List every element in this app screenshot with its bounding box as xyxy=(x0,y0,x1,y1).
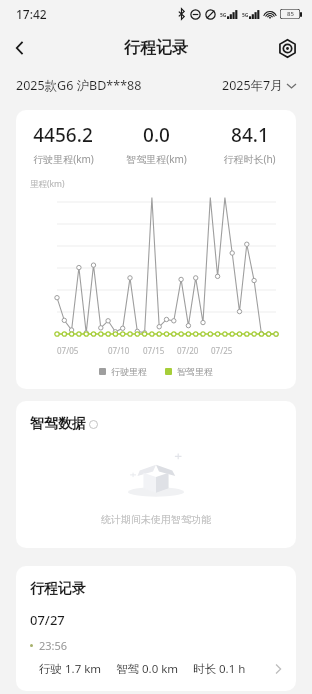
staticText: 07/27 xyxy=(30,611,65,629)
staticText: 17:42 xyxy=(16,6,47,22)
staticText: 行驶 1.7 km xyxy=(39,661,102,677)
staticText: 23:56 xyxy=(39,638,68,653)
staticText: 07/25 xyxy=(211,345,233,356)
staticText: 2025款G6 沪BD***88 xyxy=(16,77,142,94)
button[interactable]: Settings xyxy=(270,31,304,65)
staticText: 智驾 0.0 km xyxy=(116,661,179,677)
staticText: 07/05 xyxy=(57,345,79,356)
staticText: 5G xyxy=(242,12,249,19)
staticText: 84.1 xyxy=(231,122,269,148)
staticText: 智驾里程 xyxy=(177,366,213,377)
staticText: 2025年7月 xyxy=(222,77,283,94)
staticText: 智驾里程(km) xyxy=(126,152,187,166)
staticText: 行程时长(h) xyxy=(223,152,276,166)
staticText: 4456.2 xyxy=(33,122,93,148)
staticText: 统计期间未使用智驾功能 xyxy=(16,513,296,526)
button[interactable]: Back xyxy=(0,28,40,68)
staticText: 时长 0.1 h xyxy=(193,661,246,677)
staticText: 智驾数据 xyxy=(30,415,86,433)
staticText: 07/10 xyxy=(108,345,130,356)
staticText: 行驶里程 xyxy=(111,366,147,377)
staticText: 行程记录 xyxy=(124,38,188,58)
staticText: 行程记录 xyxy=(30,580,86,598)
staticText: 里程(km) xyxy=(30,178,65,190)
staticText: 07/15 xyxy=(143,345,165,356)
staticText: 0.0 xyxy=(143,122,170,148)
staticText: 行驶里程(km) xyxy=(33,152,94,166)
staticText: 07/20 xyxy=(177,345,199,356)
button[interactable]: 23:56 xyxy=(16,638,296,691)
staticText: 5G xyxy=(220,12,227,19)
button[interactable]: 2025年7月 xyxy=(222,77,296,94)
staticText: 85 xyxy=(287,10,294,18)
other: Info xyxy=(89,420,98,429)
